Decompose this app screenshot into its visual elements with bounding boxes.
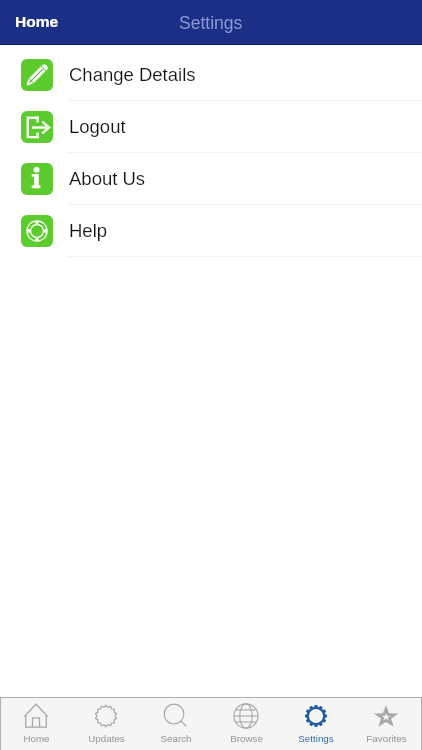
button[interactable]: Browse: [211, 698, 281, 750]
staticText: Settings: [179, 13, 243, 33]
staticText: Change Details: [69, 64, 196, 85]
button[interactable]: Change Details: [0, 49, 422, 101]
button[interactable]: Favorites: [351, 698, 421, 750]
staticText: Settings: [298, 733, 334, 744]
button[interactable]: Home: [0, 5, 74, 41]
staticText: About Us: [69, 168, 146, 189]
button[interactable]: Settings: [281, 698, 351, 750]
button[interactable]: Home: [1, 698, 71, 750]
button[interactable]: About Us: [0, 153, 422, 205]
button[interactable]: Logout: [0, 101, 422, 153]
button[interactable]: Updates: [71, 698, 141, 750]
button[interactable]: Search: [141, 698, 211, 750]
staticText: Help: [69, 220, 108, 241]
staticText: Updates: [88, 733, 125, 744]
staticText: Favorites: [366, 733, 407, 744]
button[interactable]: Help: [0, 205, 422, 257]
staticText: Logout: [69, 116, 126, 137]
staticText: Home: [23, 733, 50, 744]
staticText: Home: [15, 13, 59, 30]
staticText: Search: [160, 733, 192, 744]
staticText: Browse: [230, 733, 263, 744]
